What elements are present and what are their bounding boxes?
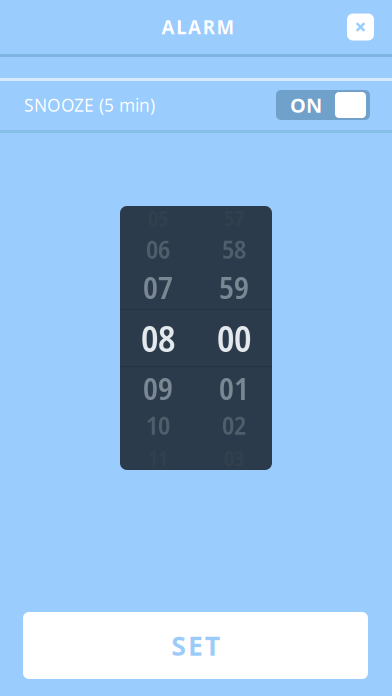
button[interactable]: Close <box>347 13 374 40</box>
staticText: 09 <box>143 367 173 409</box>
staticText: 01 <box>219 367 249 409</box>
staticText: 06 <box>146 232 170 266</box>
staticText: T <box>205 628 220 663</box>
staticText: M <box>217 15 235 39</box>
staticText: 11 <box>148 443 168 473</box>
staticText: 07 <box>143 266 173 308</box>
staticText: ON <box>290 92 322 118</box>
staticText: A <box>161 15 174 39</box>
staticText: 03 <box>224 443 244 473</box>
staticText: A <box>188 15 201 39</box>
staticText: L <box>176 15 186 39</box>
staticText: SNOOZE (5 min) <box>24 93 155 116</box>
staticText: S <box>171 628 186 663</box>
staticText: 00 <box>217 313 251 362</box>
staticText: 58 <box>222 232 246 266</box>
staticText: E <box>188 628 203 663</box>
staticText: 57 <box>224 203 244 233</box>
staticText: 08 <box>141 313 175 362</box>
staticText: 10 <box>146 408 170 442</box>
staticText: R <box>203 15 215 39</box>
button[interactable]: SNOOZE (5 min) <box>0 79 392 131</box>
button[interactable]: S <box>23 612 368 679</box>
staticText: 05 <box>148 203 168 233</box>
staticText: 02 <box>222 408 246 442</box>
staticText: 59 <box>219 266 249 308</box>
